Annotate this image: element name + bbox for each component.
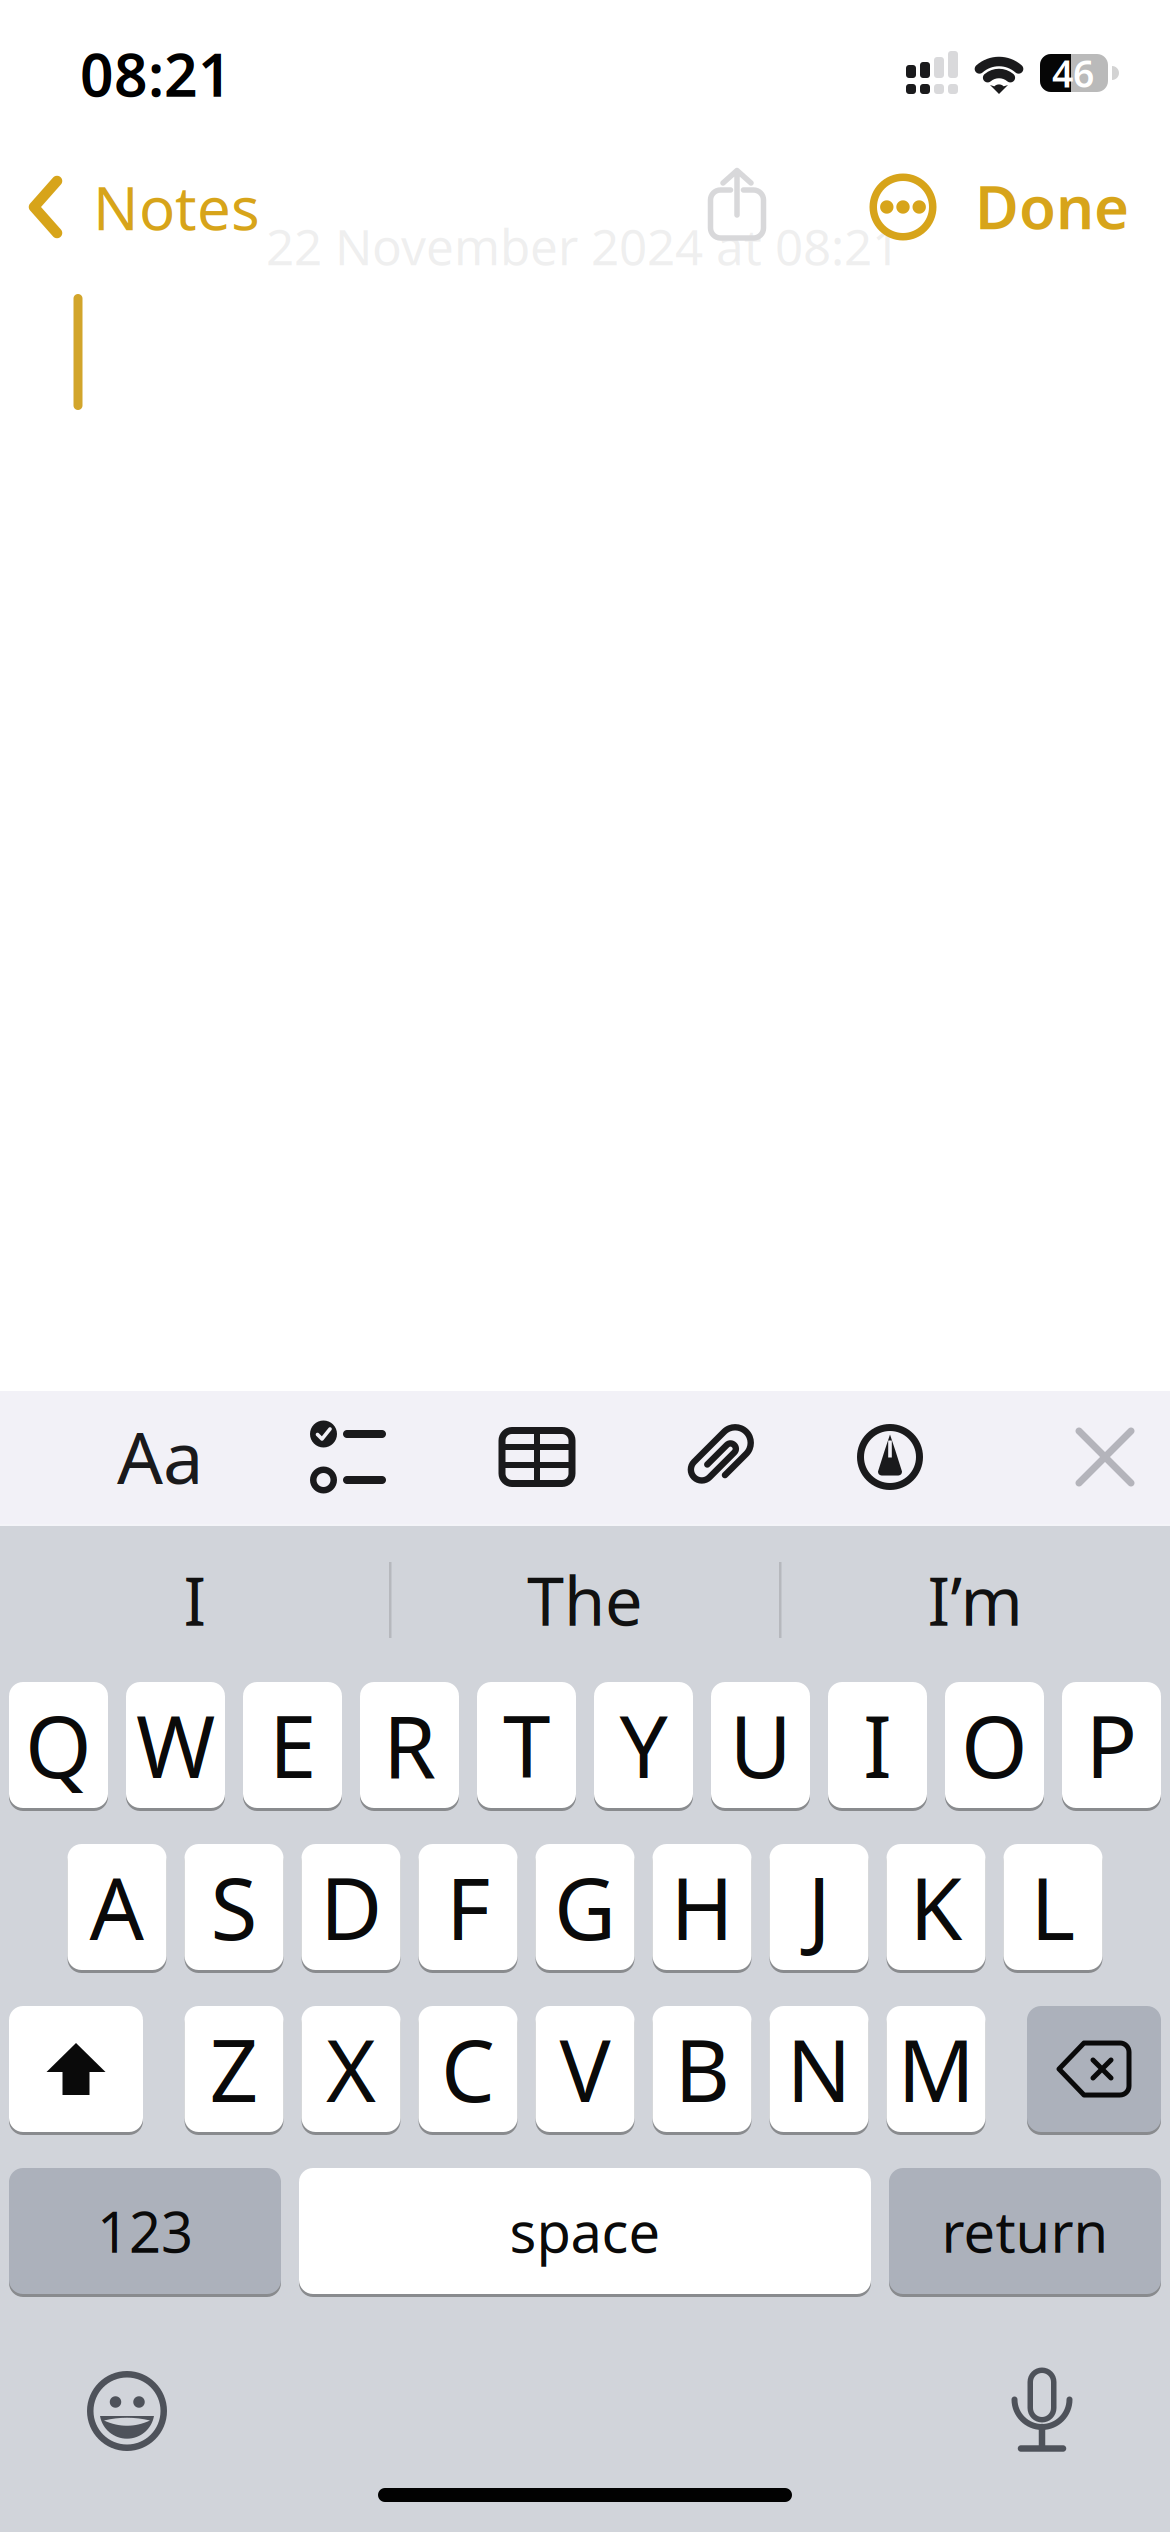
button[interactable]: S [184,1842,283,1971]
staticText: Z [209,2012,258,2126]
button[interactable]: Dismiss keyboard [1077,1429,1133,1485]
staticText: I’m [927,1556,1022,1644]
staticText: P [1085,1688,1137,1802]
button[interactable]: I’m [787,1546,1163,1654]
staticText: U [729,1688,791,1802]
button[interactable]: Q [9,1680,108,1809]
staticText: 22 November 2024 at 08:21 [266,213,900,279]
staticText: H [670,1850,733,1964]
staticText: E [269,1688,316,1802]
button[interactable]: More [869,173,936,240]
button[interactable]: Z [184,2004,283,2133]
staticText: I [183,1556,206,1644]
button[interactable]: Checklist [310,1420,384,1493]
staticText: I [863,1688,892,1802]
staticText: S [210,1850,257,1964]
button[interactable]: Markup [857,1424,923,1490]
staticText: F [446,1850,490,1964]
button[interactable]: Dictate [1012,2365,1071,2452]
staticText: J [807,1850,830,1964]
button[interactable]: Attach [687,1424,755,1492]
button[interactable]: J [769,1842,868,1971]
button[interactable]: P [1062,1680,1161,1809]
staticText: A [89,1850,144,1964]
button[interactable]: N [769,2004,868,2133]
button[interactable]: H [652,1842,751,1971]
staticText: Done [975,166,1129,246]
staticText: 123 [97,2194,193,2268]
button[interactable]: Delete [1027,2004,1161,2133]
button[interactable]: E [243,1680,342,1809]
button[interactable]: T [477,1680,576,1809]
staticText: C [441,2012,495,2126]
button[interactable]: Y [594,1680,693,1809]
staticText: return [941,2194,1108,2268]
button[interactable]: 123 [9,2166,281,2295]
staticText: Y [619,1688,667,1802]
button[interactable]: L [1003,1842,1102,1971]
staticText: R [383,1688,436,1802]
staticText: The [527,1556,643,1644]
button[interactable]: A [67,1842,166,1971]
button[interactable]: I [828,1680,927,1809]
staticText: V [559,2012,610,2126]
button[interactable]: Table [498,1427,575,1487]
staticText: 08:21 [80,35,232,113]
button[interactable]: Share [710,170,763,238]
button[interactable]: K [886,1842,985,1971]
staticText: W [136,1688,215,1802]
button[interactable]: F [418,1842,517,1971]
button[interactable]: B [652,2004,751,2133]
staticText: O [961,1688,1028,1802]
button[interactable]: X [301,2004,400,2133]
button[interactable]: O [945,1680,1044,1809]
button[interactable]: return [889,2166,1161,2295]
staticText: X [326,2012,376,2126]
button[interactable]: M [886,2004,985,2133]
button[interactable]: W [126,1680,225,1809]
button[interactable]: space [299,2166,871,2295]
button[interactable]: I [7,1546,383,1654]
staticText: G [554,1850,616,1964]
button[interactable]: Format [117,1408,203,1504]
staticText: B [674,2012,729,2126]
staticText: N [786,2012,851,2126]
button[interactable]: Notes [29,167,260,247]
button[interactable]: G [535,1842,634,1971]
staticText: M [897,2012,974,2126]
button[interactable]: V [535,2004,634,2133]
staticText: D [320,1850,382,1964]
staticText: K [909,1850,962,1964]
staticText: Aa [117,1408,203,1504]
button[interactable]: The [397,1546,773,1654]
button[interactable]: C [418,2004,517,2133]
button[interactable]: R [360,1680,459,1809]
button[interactable]: Done [975,166,1129,246]
button[interactable]: Emoji [87,2371,167,2451]
staticText: 46 [1052,48,1094,98]
button[interactable]: Shift [9,2004,143,2133]
staticText: Notes [93,167,260,247]
staticText: L [1030,1850,1075,1964]
button[interactable]: U [711,1680,810,1809]
staticText: Q [25,1688,92,1802]
button[interactable]: D [301,1842,400,1971]
staticText: space [509,2194,660,2268]
staticText: T [503,1688,550,1802]
